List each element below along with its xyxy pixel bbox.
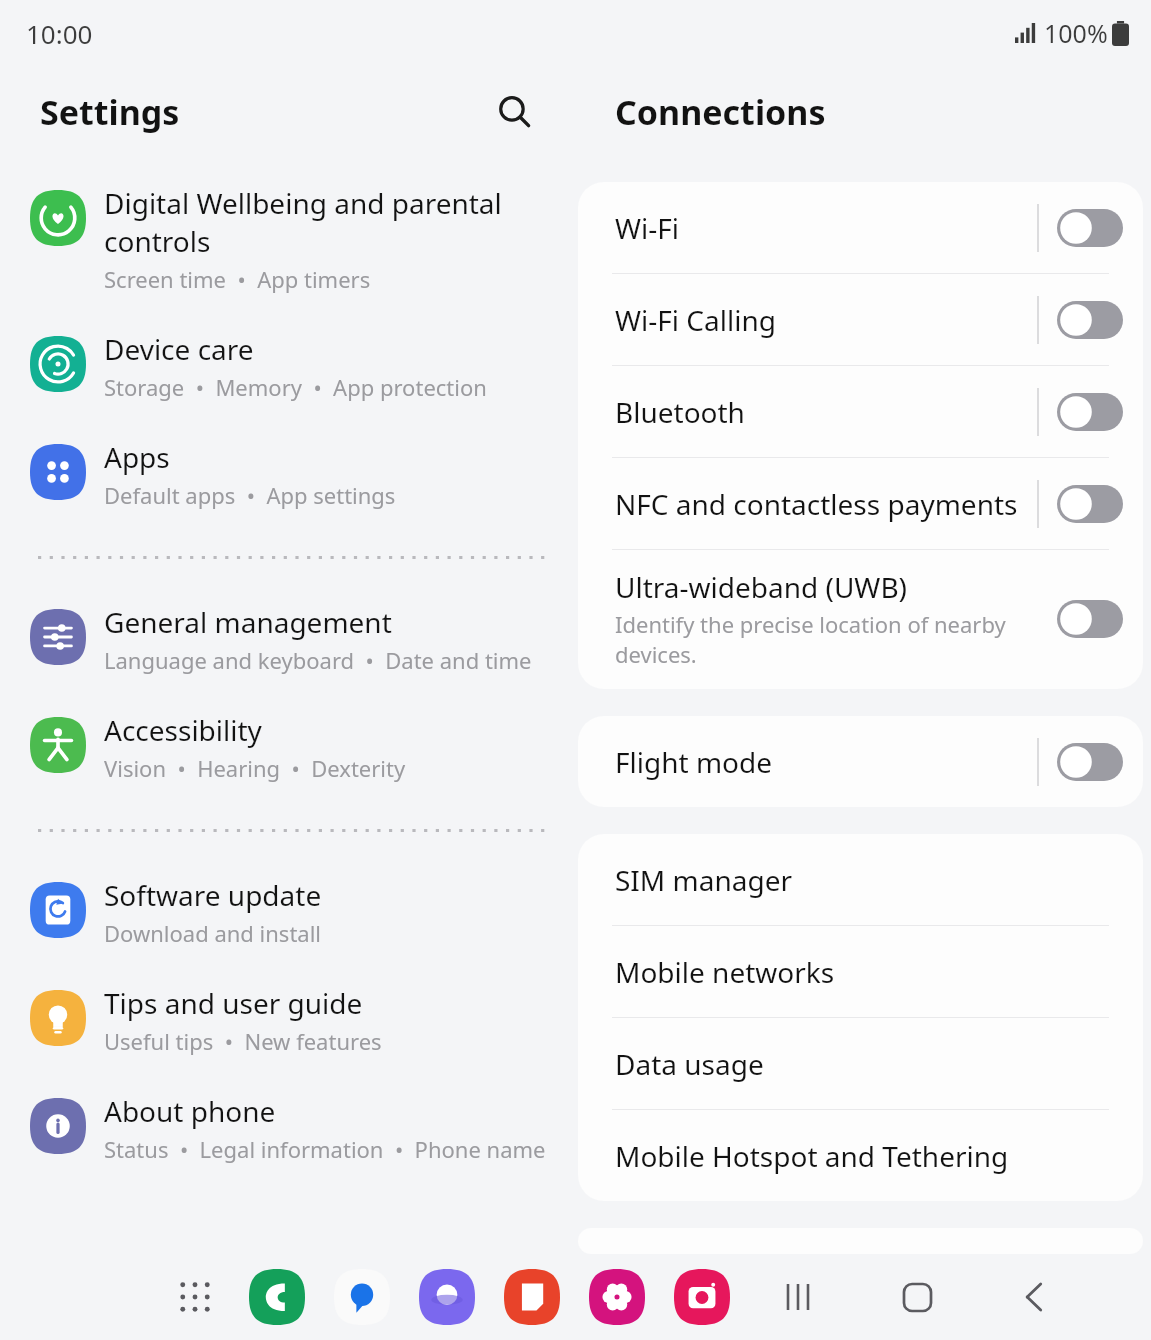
- staticText: Mobile networks: [615, 953, 835, 991]
- button[interactable]: Wi-Fi Calling: [578, 274, 1143, 365]
- button[interactable]: Apps: [0, 438, 575, 510]
- staticText: Apps: [104, 438, 170, 476]
- staticText: Flight mode: [615, 743, 773, 781]
- staticText: Identify the precise location of nearby …: [615, 609, 1006, 669]
- staticText: Useful tips • New features: [104, 1026, 382, 1056]
- staticText: Language and keyboard • Date and time: [104, 645, 532, 675]
- staticText: Status • Legal information • Phone name: [104, 1134, 546, 1164]
- staticText: SIM manager: [615, 861, 793, 899]
- button[interactable]: Toggle: [1057, 600, 1123, 638]
- staticText: 100%: [1044, 16, 1108, 50]
- button[interactable]: Home: [879, 1259, 955, 1335]
- staticText: Digital Wellbeing and parental controls: [104, 184, 502, 260]
- button[interactable]: Data usage: [578, 1018, 1143, 1109]
- button[interactable]: Toggle: [1057, 485, 1123, 523]
- button[interactable]: Ultra-wideband (UWB): [578, 550, 1143, 689]
- button[interactable]: Internet: [417, 1267, 477, 1327]
- staticText: Bluetooth: [615, 393, 745, 431]
- button[interactable]: Flight mode: [578, 716, 1143, 807]
- staticText: Software update: [104, 876, 322, 914]
- staticText: Mobile Hotspot and Tethering: [615, 1137, 1009, 1175]
- staticText: Data usage: [615, 1045, 764, 1083]
- staticText: Storage • Memory • App protection: [104, 372, 487, 402]
- button[interactable]: Toggle: [1057, 301, 1123, 339]
- button[interactable]: Mobile networks: [578, 926, 1143, 1017]
- staticText: General management: [104, 603, 392, 641]
- staticText: Default apps • App settings: [104, 480, 396, 510]
- button[interactable]: General management: [0, 603, 575, 675]
- button[interactable]: Phone: [247, 1267, 307, 1327]
- staticText: About phone: [104, 1092, 276, 1130]
- button[interactable]: About phone: [0, 1092, 575, 1164]
- button[interactable]: Recents: [761, 1259, 837, 1335]
- staticText: NFC and contactless payments: [615, 485, 1018, 523]
- staticText: Ultra-wideband (UWB): [615, 568, 908, 606]
- button[interactable]: Apps: [168, 1270, 222, 1324]
- button[interactable]: Search: [487, 84, 543, 140]
- button[interactable]: SIM manager: [578, 834, 1143, 925]
- button[interactable]: Toggle: [1057, 743, 1123, 781]
- button[interactable]: Notes: [502, 1267, 562, 1327]
- staticText: Screen time • App timers: [104, 264, 371, 294]
- staticText: Accessibility: [104, 711, 262, 749]
- button[interactable]: Tips and user guide: [0, 984, 575, 1056]
- staticText: Settings: [40, 89, 180, 135]
- button[interactable]: Digital Wellbeing and parental controls: [0, 184, 575, 294]
- button[interactable]: Messages: [332, 1267, 392, 1327]
- button[interactable]: Mobile Hotspot and Tethering: [578, 1110, 1143, 1201]
- button[interactable]: Wi-Fi: [578, 182, 1143, 273]
- button[interactable]: NFC and contactless payments: [578, 458, 1143, 549]
- staticText: Device care: [104, 330, 254, 368]
- button[interactable]: Accessibility: [0, 711, 575, 783]
- button[interactable]: Device care: [0, 330, 575, 402]
- staticText: Wi-Fi Calling: [615, 301, 776, 339]
- staticText: Vision • Hearing • Dexterity: [104, 753, 406, 783]
- staticText: 10:00: [26, 16, 93, 51]
- staticText: Connections: [615, 89, 826, 135]
- button[interactable]: Toggle: [1057, 209, 1123, 247]
- button[interactable]: Camera: [672, 1267, 732, 1327]
- button[interactable]: Toggle: [1057, 393, 1123, 431]
- staticText: Wi-Fi: [615, 209, 680, 247]
- staticText: Tips and user guide: [104, 984, 363, 1022]
- button[interactable]: Gallery: [587, 1267, 647, 1327]
- staticText: Download and install: [104, 918, 322, 948]
- button[interactable]: Back: [997, 1259, 1073, 1335]
- button[interactable]: Bluetooth: [578, 366, 1143, 457]
- button[interactable]: Software update: [0, 876, 575, 948]
